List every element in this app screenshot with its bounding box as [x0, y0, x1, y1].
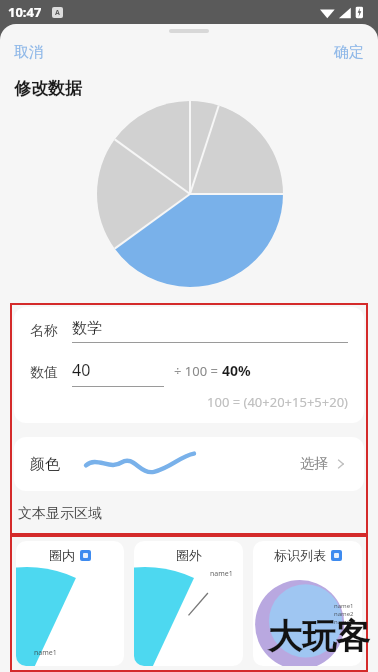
button[interactable]: 取消: [0, 37, 58, 68]
button[interactable]: 确定: [320, 37, 378, 68]
staticText: 40%: [222, 361, 251, 380]
staticText: 100 = (40+20+15+5+20): [30, 393, 348, 411]
staticText: 40: [72, 359, 91, 381]
staticText: 颜色: [30, 455, 60, 474]
staticText: name3: [334, 618, 354, 626]
staticText: name1: [34, 648, 57, 658]
button[interactable]: 颜色: [14, 437, 364, 491]
staticText: 修改数据: [14, 78, 82, 99]
staticText: 文本显示区域: [18, 505, 102, 523]
staticText: name1: [334, 602, 354, 610]
button[interactable]: 标识列表: [253, 541, 362, 666]
staticText: 数值: [30, 364, 58, 382]
staticText: 大玩客: [268, 615, 370, 658]
staticText: name1: [210, 569, 233, 579]
staticText: 确定: [334, 43, 364, 62]
staticText: 圈内: [49, 547, 75, 563]
staticText: A: [55, 8, 60, 18]
staticText: name2: [334, 610, 354, 618]
staticText: 标识列表: [274, 547, 326, 563]
button[interactable]: 圈内: [16, 541, 124, 666]
staticText: 圈外: [176, 547, 202, 563]
staticText: 名称: [30, 322, 58, 340]
staticText: 取消: [14, 43, 44, 62]
staticText: 数学: [72, 319, 102, 338]
staticText: 选择: [300, 455, 328, 473]
staticText: 10:47: [8, 3, 42, 21]
button[interactable]: 圈外: [134, 541, 243, 666]
staticText: ÷ 100 =: [174, 362, 222, 380]
